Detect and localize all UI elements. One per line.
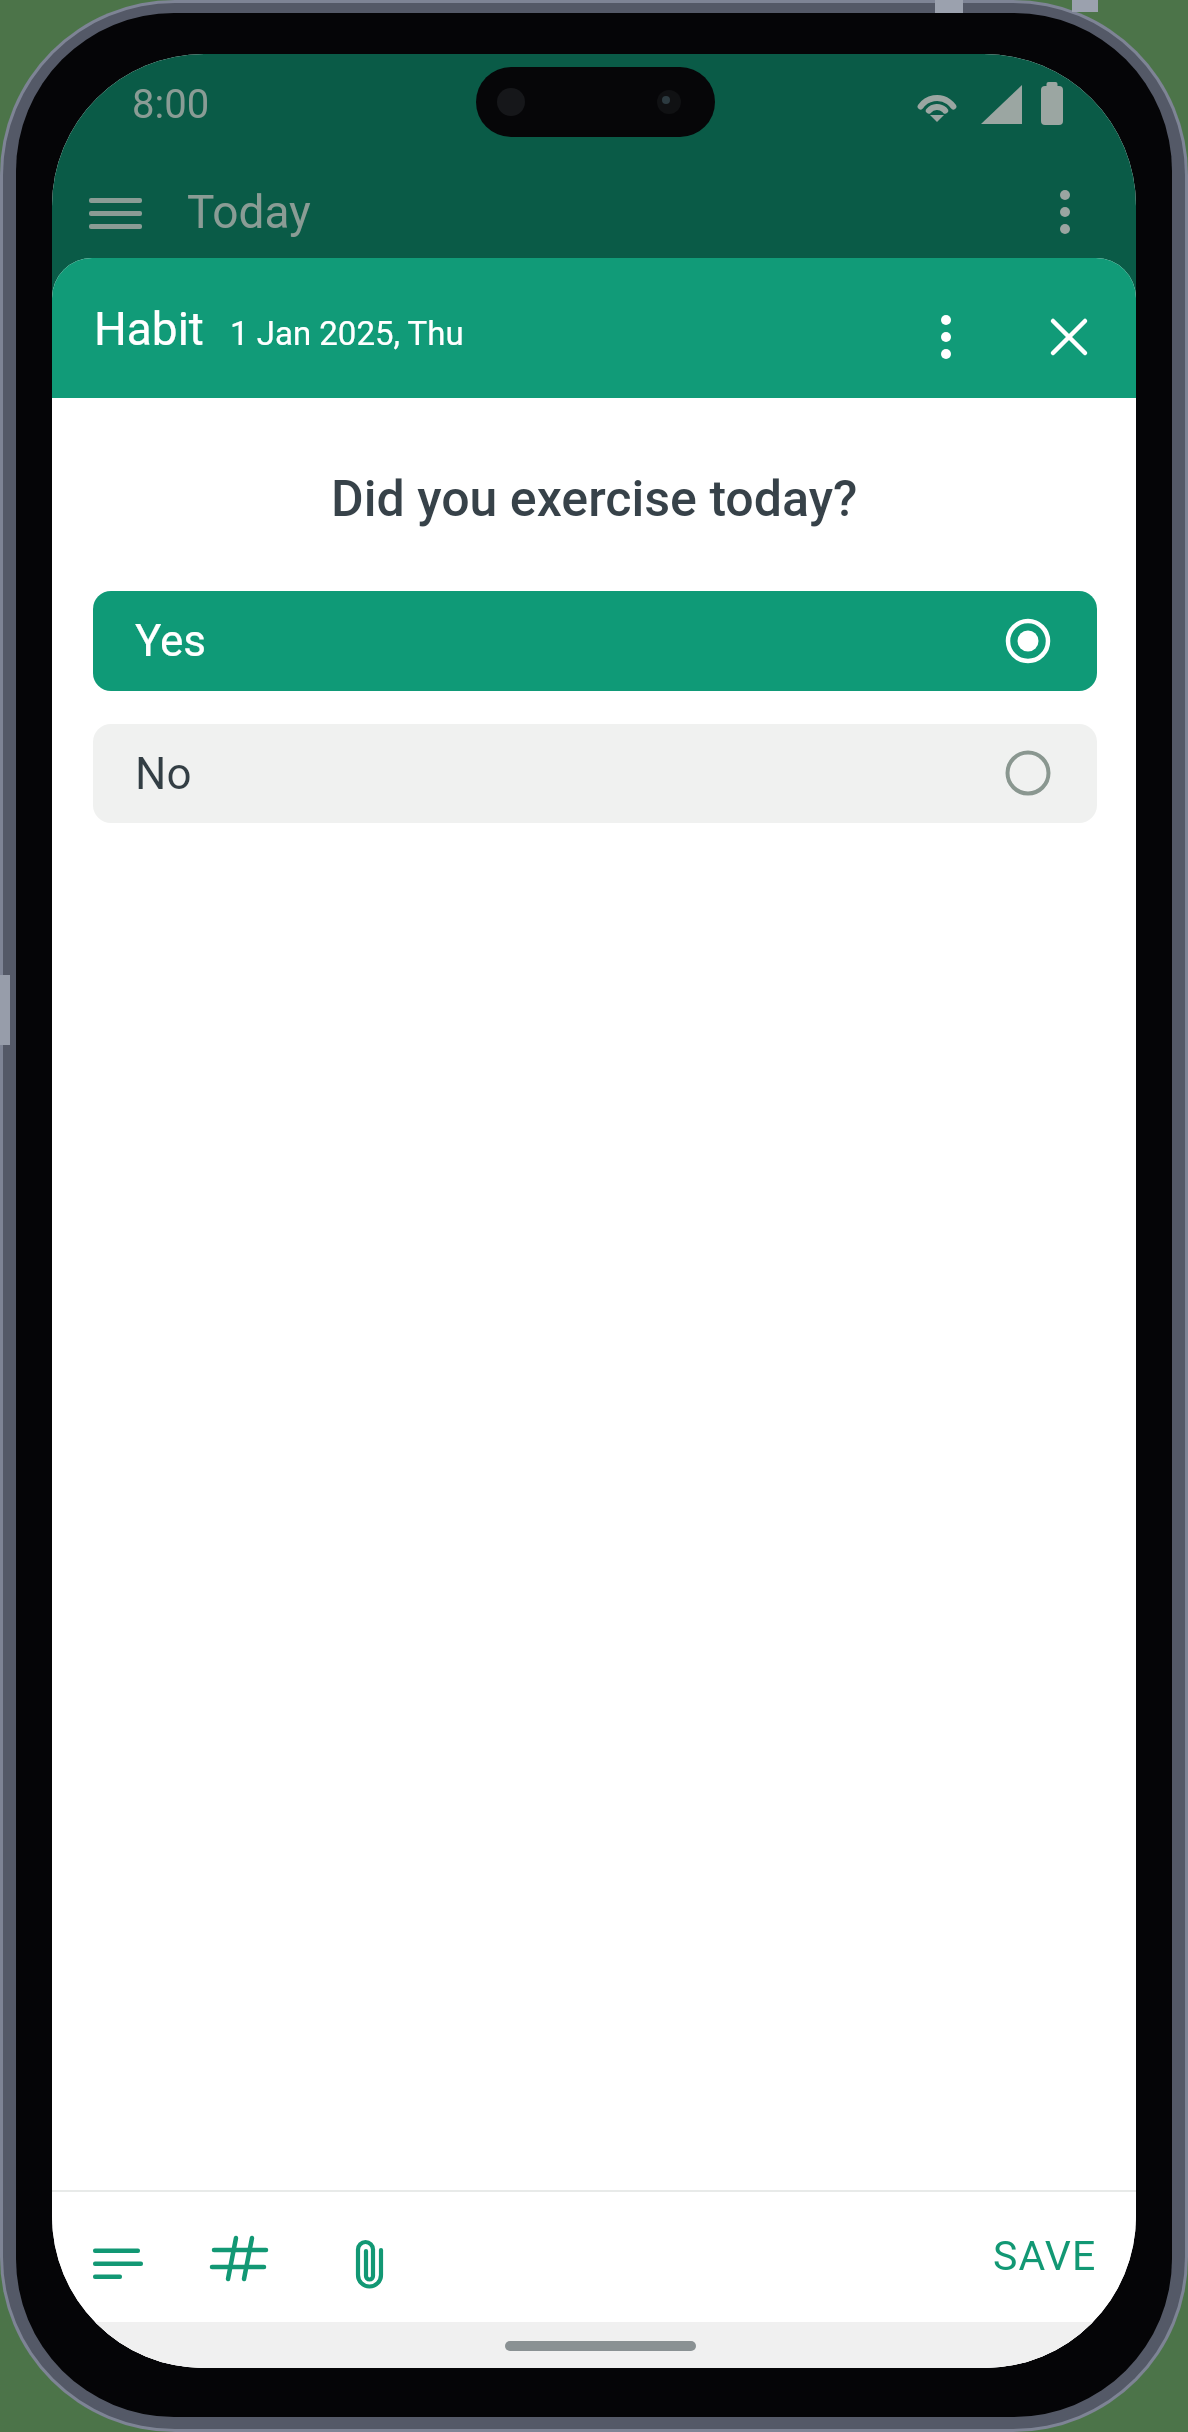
- staticText: Today: [187, 185, 311, 239]
- staticText: 8:00: [132, 81, 210, 128]
- button[interactable]: [202, 2218, 282, 2290]
- staticText: SAVE: [993, 2232, 1097, 2280]
- staticText: Yes: [135, 615, 207, 667]
- button[interactable]: [77, 2237, 157, 2309]
- button[interactable]: SAVE: [977, 2223, 1112, 2289]
- button[interactable]: [1045, 313, 1093, 361]
- button[interactable]: [926, 309, 966, 365]
- staticText: Did you exercise today?: [331, 470, 858, 529]
- staticText: Habit: [94, 302, 204, 356]
- button[interactable]: [1045, 184, 1085, 240]
- button[interactable]: Yes: [93, 591, 1097, 691]
- button[interactable]: [82, 189, 152, 239]
- button[interactable]: [337, 2218, 407, 2290]
- staticText: No: [135, 748, 192, 800]
- staticText: 1 Jan 2025, Thu: [230, 314, 464, 353]
- button[interactable]: No: [93, 724, 1097, 823]
